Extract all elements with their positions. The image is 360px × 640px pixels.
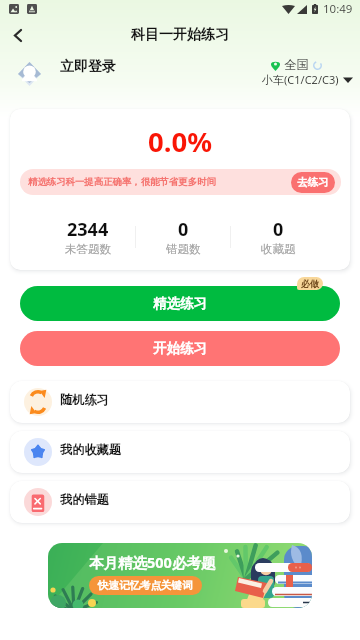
staticText: 开始练习	[153, 340, 207, 357]
staticText: 0.0%	[148, 123, 212, 160]
staticText: 未答题数	[65, 242, 111, 256]
staticText: 全国	[284, 57, 309, 73]
button[interactable]: Back	[0, 20, 36, 50]
staticText: 10:49	[323, 1, 353, 17]
staticText: 0	[273, 217, 284, 242]
button[interactable]: 全国	[271, 57, 322, 73]
staticText: 科目一开始练习	[131, 26, 229, 44]
button[interactable]: 去练习	[291, 172, 335, 193]
button[interactable]: 精选练习	[20, 286, 340, 321]
staticText: 收藏题	[261, 242, 296, 256]
button[interactable]: 立即登录	[60, 58, 116, 76]
button[interactable]: 2344	[40, 217, 135, 256]
staticText: 快速记忆考点关键词	[98, 579, 193, 592]
button[interactable]: 小车(C1/C2/C3)	[262, 72, 353, 87]
staticText: 2344	[67, 217, 109, 242]
staticText: 本月精选500必考题	[89, 552, 216, 572]
button[interactable]: 精选练习科一提高正确率，很能节省更多时间	[20, 169, 341, 195]
button[interactable]: 本月精选500必考题	[48, 543, 312, 608]
button[interactable]: 我的错题	[10, 481, 350, 523]
staticText: 我的收藏题	[60, 442, 121, 457]
staticText: 错题数	[166, 242, 201, 256]
button[interactable]: 随机练习	[10, 381, 350, 423]
button[interactable]: 0	[136, 217, 230, 256]
staticText: 随机练习	[60, 392, 109, 407]
staticText: 我的错题	[60, 492, 109, 507]
staticText: 必做	[301, 278, 319, 289]
staticText: 0	[178, 217, 189, 242]
button[interactable]: 开始练习	[20, 331, 340, 366]
button[interactable]: 0	[231, 217, 325, 256]
staticText: 精选练习	[153, 295, 207, 312]
button[interactable]: 我的收藏题	[10, 431, 350, 473]
staticText: 精选练习科一提高正确率，很能节省更多时间	[28, 176, 216, 188]
staticText: 去练习	[297, 176, 329, 189]
staticText: 小车(C1/C2/C3)	[262, 72, 339, 87]
